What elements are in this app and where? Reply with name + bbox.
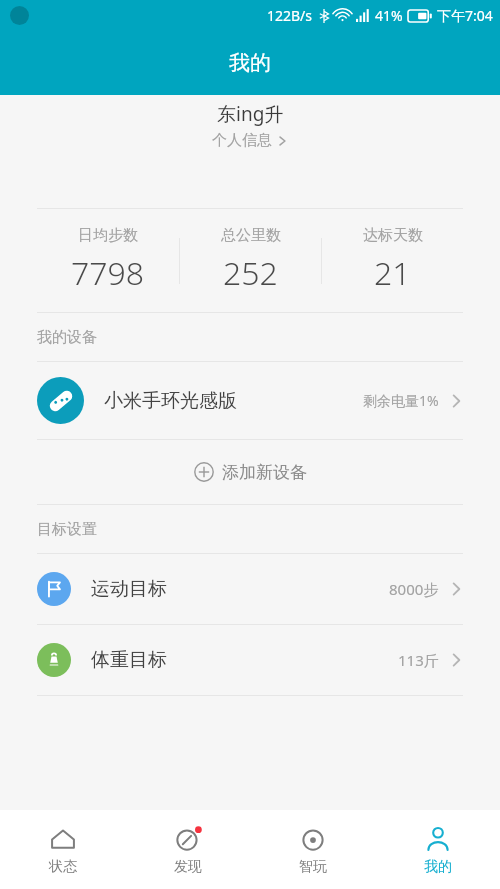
staticText: 下午7:04	[437, 6, 493, 25]
staticText: 剩余电量1%	[363, 391, 439, 410]
staticText: 达标天数	[363, 226, 423, 245]
staticText: 122B/s	[267, 6, 313, 25]
button[interactable]: 东ing升	[0, 101, 500, 150]
staticText: 113斤	[398, 650, 439, 670]
button[interactable]: 我的	[375, 810, 500, 889]
staticText: 添加新设备	[222, 462, 307, 483]
staticText: 东ing升	[217, 101, 284, 127]
staticText: 日均步数	[78, 226, 138, 245]
staticText: 发现	[174, 858, 202, 876]
staticText: 总公里数	[221, 226, 281, 245]
staticText: 252	[223, 251, 278, 295]
staticText: 状态	[49, 858, 77, 876]
button[interactable]: 小米手环光感版	[0, 362, 500, 439]
button[interactable]: 智玩	[250, 810, 375, 889]
staticText: 8000步	[389, 579, 439, 599]
staticText: 小米手环光感版	[104, 389, 363, 413]
button[interactable]: 状态	[0, 810, 125, 889]
staticText: 体重目标	[91, 648, 398, 672]
staticText: 我的设备	[37, 328, 97, 347]
staticText: 目标设置	[37, 520, 97, 539]
button[interactable]: 体重目标	[0, 625, 500, 695]
button[interactable]: 发现	[125, 810, 250, 889]
staticText: 个人信息	[212, 131, 272, 150]
staticText: 我的	[229, 50, 271, 76]
staticText: 智玩	[299, 858, 327, 876]
button[interactable]: 添加新设备	[0, 440, 500, 504]
staticText: 21	[374, 251, 411, 295]
staticText: 7798	[71, 251, 145, 295]
staticText: 运动目标	[91, 577, 389, 601]
staticText: 41%	[375, 6, 403, 25]
staticText: 我的	[424, 858, 452, 876]
button[interactable]: 运动目标	[0, 554, 500, 624]
